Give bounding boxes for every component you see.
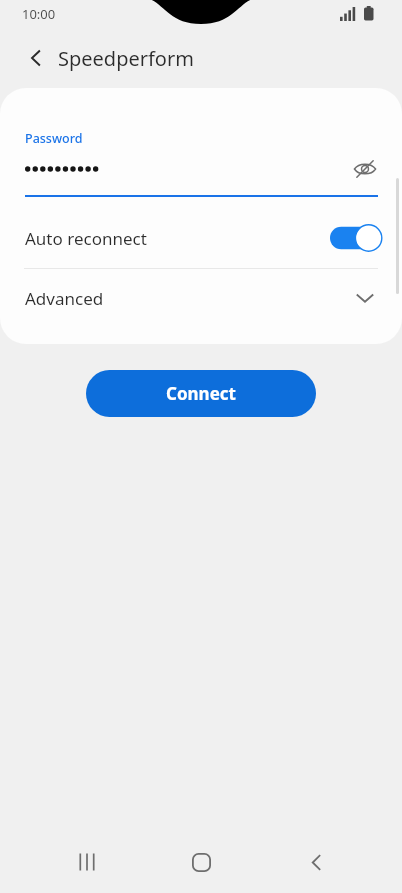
button[interactable]: Back (288, 834, 344, 890)
button[interactable]: Auto reconnect (0, 208, 402, 268)
button[interactable]: Connect (86, 370, 316, 417)
button[interactable]: Password (0, 88, 402, 208)
button[interactable]: Home (173, 834, 229, 890)
staticText: Password (25, 130, 83, 147)
staticText: Connect (166, 382, 236, 405)
staticText: Auto reconnect (25, 227, 147, 250)
staticText: 10:00 (22, 5, 56, 23)
button[interactable]: Advanced (0, 269, 402, 327)
button[interactable]: Recent apps (59, 834, 115, 890)
staticText: Speedperform (58, 45, 194, 72)
button[interactable]: Show password (344, 148, 386, 190)
button[interactable]: Back (14, 36, 58, 80)
staticText: Advanced (25, 287, 104, 310)
